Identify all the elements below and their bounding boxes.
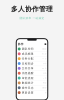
button[interactable]: 成员权限 xyxy=(16,51,48,56)
button[interactable]: 审批流程 xyxy=(16,76,48,80)
button[interactable]: 任务分配 xyxy=(16,56,48,61)
button[interactable]: 文件共享 xyxy=(16,66,48,71)
button[interactable]: 操作日志 xyxy=(16,85,48,90)
staticText: 消息提醒 xyxy=(22,72,34,75)
button[interactable]: 日程同步 xyxy=(16,61,48,66)
button[interactable]: 数据统计 xyxy=(16,81,48,85)
staticText: 多人协作管理 xyxy=(11,5,53,13)
staticText: 更多设置 xyxy=(22,91,34,94)
staticText: 管理 xyxy=(42,48,44,50)
staticText: 3 xyxy=(43,77,44,79)
staticText: 文件共享 xyxy=(22,67,34,70)
staticText: 团队空间 xyxy=(22,47,34,51)
staticText: 全部 xyxy=(42,87,44,88)
staticText: 操作日志 xyxy=(22,86,34,89)
staticText: 任务分配 xyxy=(22,57,34,60)
button[interactable]: Add xyxy=(44,43,46,45)
button[interactable]: 更多设置 xyxy=(16,90,48,95)
staticText: 日程同步 xyxy=(22,62,34,65)
staticText: 成员权限 xyxy=(22,52,34,55)
staticText: 8人 xyxy=(42,53,44,55)
staticText: 审批流程 xyxy=(22,76,34,80)
staticText: 数据统计 xyxy=(22,81,34,85)
staticText: 12 xyxy=(42,58,44,60)
staticText: 团队效率 一站搞定 xyxy=(19,16,44,20)
button[interactable]: 团队空间 xyxy=(16,47,48,51)
staticText: 协作 xyxy=(18,42,24,46)
button[interactable]: 消息提醒 xyxy=(16,71,48,75)
staticText: 看 xyxy=(43,82,44,84)
staticText: 开 xyxy=(43,72,44,74)
